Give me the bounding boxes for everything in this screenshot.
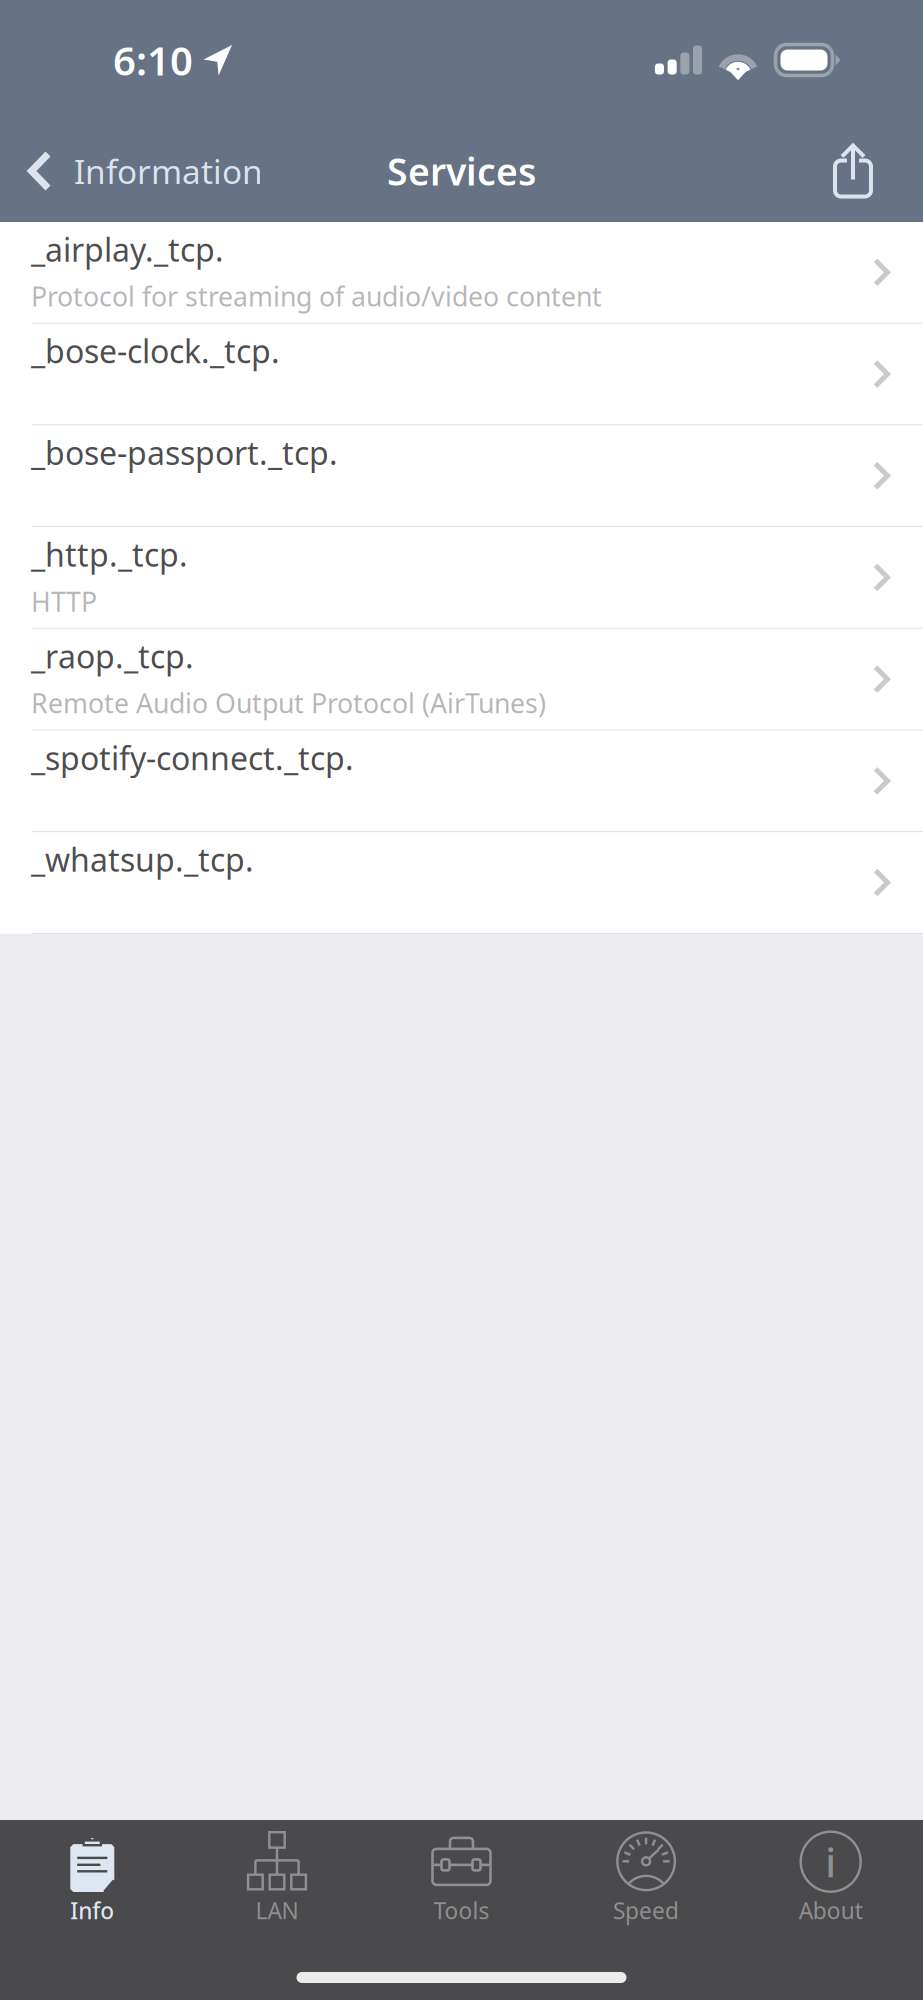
staticText: _spotify-connect._tcp.: [31, 736, 354, 779]
staticText: i: [825, 1835, 836, 1888]
staticText: HTTP: [31, 584, 97, 619]
staticText: Tools: [433, 1895, 489, 1925]
staticText: About: [799, 1895, 863, 1925]
button[interactable]: Information: [0, 120, 281, 222]
staticText: Protocol for streaming of audio/video co…: [31, 278, 602, 314]
button[interactable]: Info: [0, 1820, 185, 1932]
staticText: Services: [387, 146, 536, 196]
staticText: _bose-passport._tcp.: [31, 431, 338, 474]
staticText: Info: [70, 1895, 114, 1925]
staticText: LAN: [255, 1895, 298, 1925]
staticText: Remote Audio Output Protocol (AirTunes): [31, 685, 546, 721]
button[interactable]: LAN: [185, 1820, 369, 1932]
button[interactable]: Share: [813, 120, 923, 222]
button[interactable]: _whatsup._tcp.: [0, 832, 923, 934]
button[interactable]: i: [738, 1820, 923, 1932]
staticText: Speed: [613, 1895, 679, 1925]
staticText: _whatsup._tcp.: [31, 838, 254, 881]
staticText: _raop._tcp.: [31, 635, 194, 677]
button[interactable]: _raop._tcp.: [0, 629, 923, 730]
staticText: 6:10: [113, 33, 193, 86]
button[interactable]: _bose-passport._tcp.: [0, 425, 923, 527]
button[interactable]: _http._tcp.: [0, 527, 923, 629]
staticText: _airplay._tcp.: [31, 228, 224, 270]
button[interactable]: _airplay._tcp.: [0, 222, 923, 324]
staticText: Information: [74, 149, 263, 193]
staticText: _bose-clock._tcp.: [31, 330, 280, 372]
button[interactable]: Tools: [369, 1820, 554, 1932]
staticText: _http._tcp.: [31, 533, 188, 576]
button[interactable]: _bose-clock._tcp.: [0, 324, 923, 425]
button[interactable]: _spotify-connect._tcp.: [0, 730, 923, 832]
button[interactable]: Speed: [554, 1820, 738, 1932]
